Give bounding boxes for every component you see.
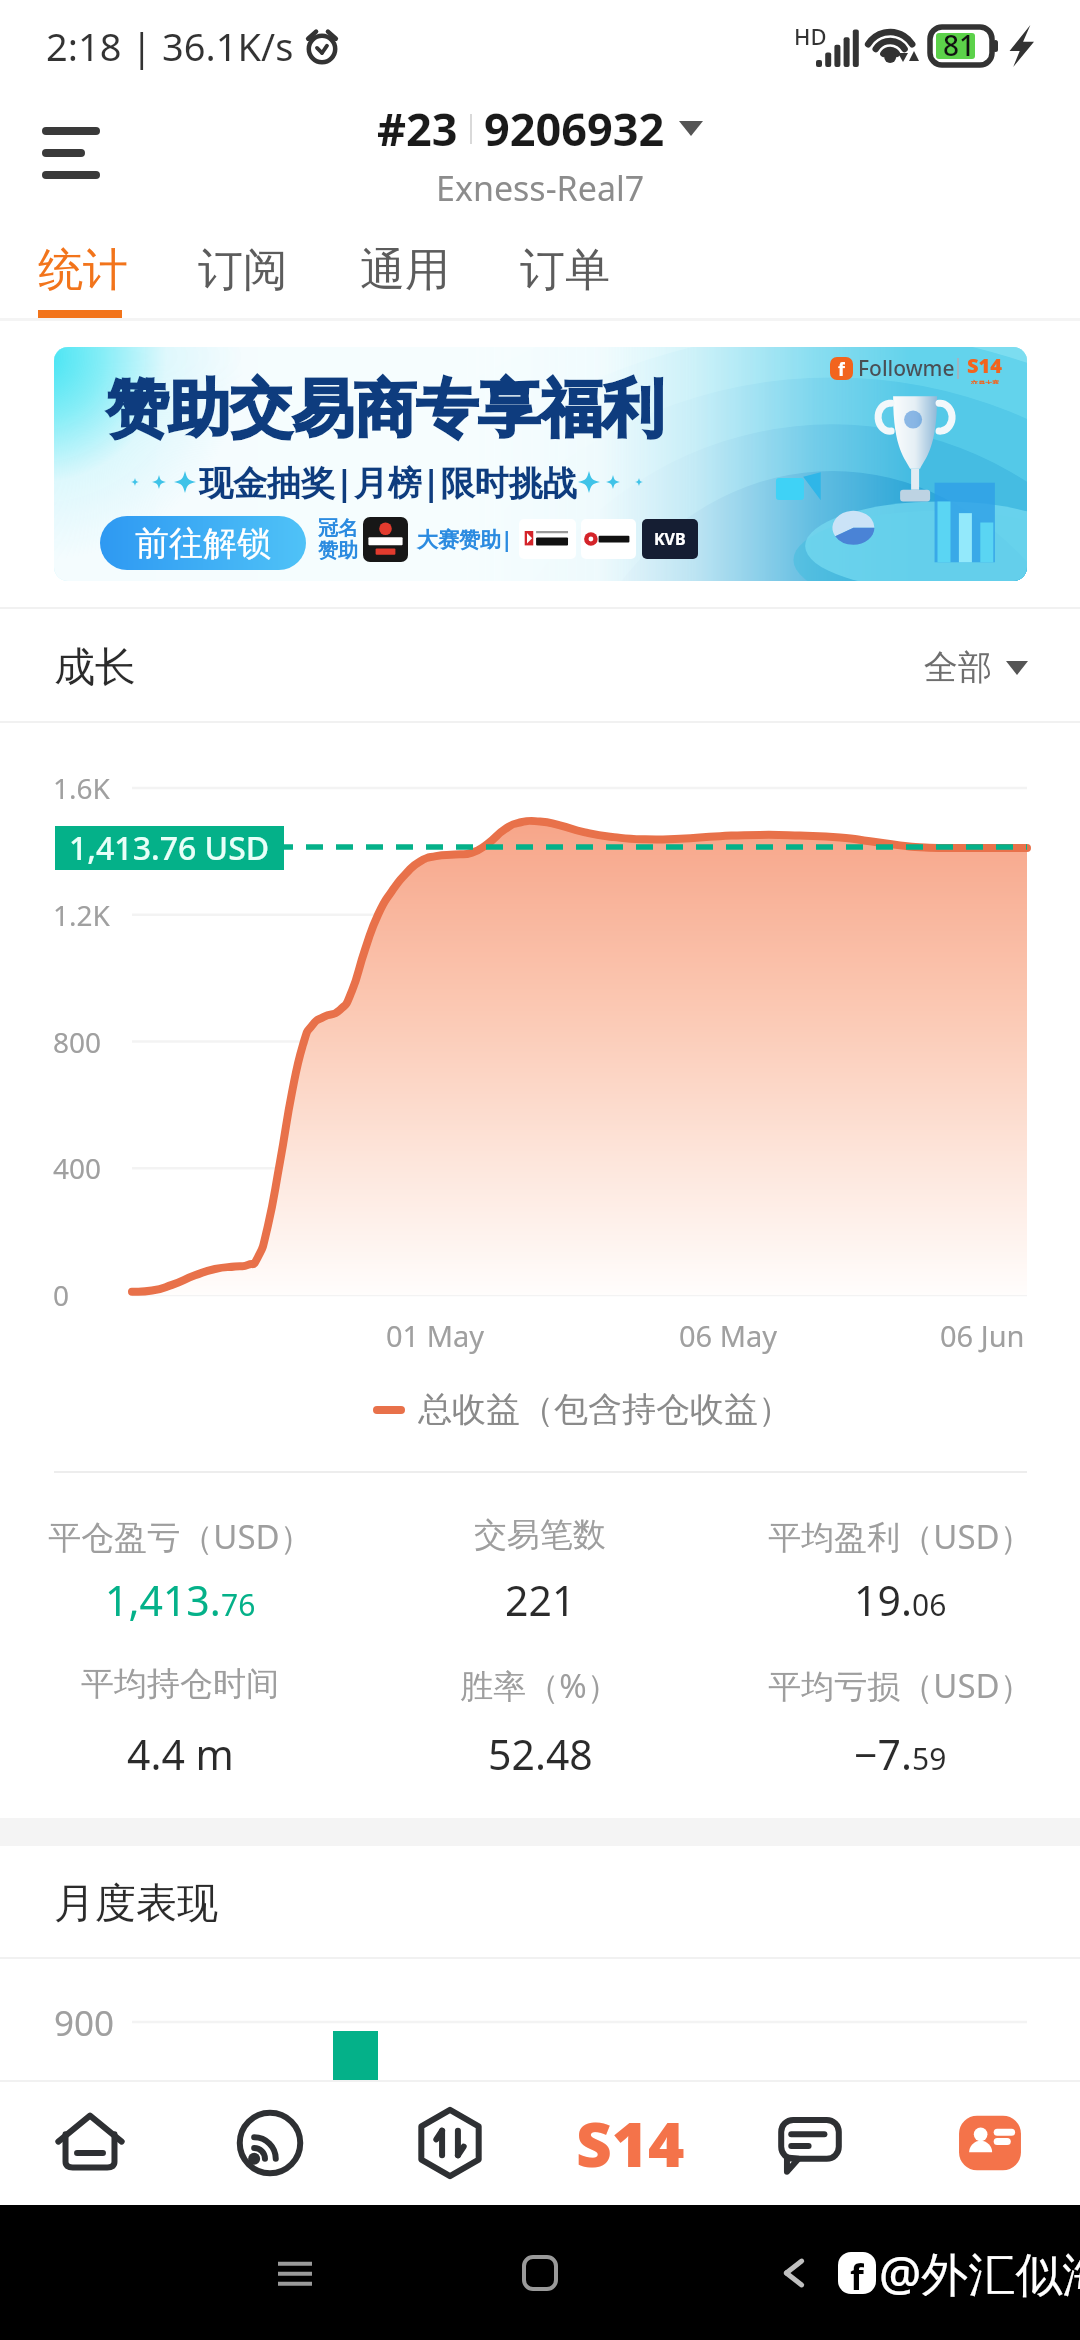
button[interactable]: Trade bbox=[360, 2080, 540, 2205]
staticText: 通用 bbox=[360, 242, 450, 299]
button[interactable]: 前往解锁 bbox=[100, 516, 306, 570]
button[interactable]: 统计 bbox=[38, 220, 162, 320]
button[interactable]: Recent apps bbox=[272, 2250, 318, 2296]
button[interactable]: S14 contest bbox=[540, 2080, 720, 2205]
staticText: 成长 bbox=[54, 642, 136, 694]
staticText: KVB bbox=[654, 528, 686, 550]
staticText: 总收益（包含持仓收益） bbox=[418, 1388, 792, 1431]
staticText: 06 May bbox=[679, 1316, 778, 1355]
staticText: 1.2K bbox=[53, 896, 110, 934]
staticText: 冠名 赞助 bbox=[318, 516, 358, 563]
staticText: Followme bbox=[858, 354, 955, 383]
staticText: 交易大赛 bbox=[971, 379, 999, 384]
staticText: 订单 bbox=[520, 242, 610, 299]
staticText: 800 bbox=[53, 1023, 102, 1061]
staticText: 大赛赞助| bbox=[417, 525, 513, 554]
staticText: 81 bbox=[943, 26, 976, 64]
button[interactable]: Home bbox=[517, 2250, 563, 2296]
staticText: 平均盈利（USD） bbox=[768, 1514, 1033, 1559]
staticText: HD bbox=[794, 21, 827, 51]
staticText: 221 bbox=[505, 1572, 576, 1628]
button[interactable]: 订单 bbox=[520, 220, 644, 320]
staticText: 订阅 bbox=[198, 242, 288, 299]
staticText: 1,413. bbox=[105, 1572, 221, 1628]
staticText: 前往解锁 bbox=[135, 522, 271, 565]
staticText: 0 bbox=[53, 1276, 70, 1314]
staticText: 52.48 bbox=[488, 1726, 593, 1782]
staticText: 现金抽奖|月榜|限时挑战 bbox=[199, 459, 577, 505]
staticText: S14 bbox=[967, 352, 1002, 379]
staticText: 全部 bbox=[924, 646, 992, 689]
staticText: 平仓盈亏（USD） bbox=[48, 1514, 313, 1559]
staticText: 2:18 | 36.1K/s bbox=[46, 20, 294, 72]
staticText: Exness-Real7 bbox=[436, 165, 645, 211]
staticText: 59 bbox=[912, 1738, 947, 1779]
staticText: 01 May bbox=[386, 1316, 485, 1355]
button[interactable]: Back bbox=[782, 2250, 806, 2296]
staticText: 平均持仓时间 bbox=[81, 1663, 279, 1705]
staticText: #23 bbox=[377, 98, 458, 159]
staticText: 交易笔数 bbox=[474, 1514, 606, 1556]
staticText: 06 Jun bbox=[940, 1316, 1025, 1355]
staticText: −7. bbox=[854, 1726, 912, 1782]
button[interactable]: 赞助交易商专享福利 bbox=[54, 347, 1027, 581]
staticText: 平均亏损（USD） bbox=[768, 1663, 1033, 1708]
button[interactable]: Messages bbox=[720, 2080, 900, 2205]
staticText: 19. bbox=[854, 1572, 912, 1628]
staticText: 4.4 m bbox=[127, 1726, 234, 1782]
staticText: S14 bbox=[576, 2101, 685, 2185]
staticText: 76 bbox=[221, 1584, 256, 1625]
button[interactable]: Feed bbox=[180, 2080, 360, 2205]
staticText: 400 bbox=[53, 1149, 102, 1187]
staticText: 赞助交易商专享福利 bbox=[106, 370, 664, 448]
staticText: 06 bbox=[912, 1584, 947, 1625]
button[interactable]: 全部 bbox=[924, 646, 1028, 689]
staticText: 统计 bbox=[38, 242, 128, 299]
staticText: 胜率（%） bbox=[460, 1663, 620, 1708]
staticText: @外汇似海 bbox=[879, 2241, 1080, 2305]
button[interactable]: 通用 bbox=[360, 220, 484, 320]
staticText: 1,413.76 USD bbox=[69, 826, 270, 870]
staticText: 900 bbox=[54, 1999, 115, 2047]
staticText: 1.6K bbox=[53, 769, 110, 807]
button[interactable]: Menu bbox=[42, 124, 104, 186]
button[interactable]: Home bbox=[0, 2080, 180, 2205]
staticText: f bbox=[850, 2252, 864, 2294]
staticText: 月度表现 bbox=[54, 1878, 218, 1930]
staticText: f bbox=[838, 357, 845, 380]
staticText: 9206932 bbox=[484, 98, 665, 159]
button[interactable]: 订阅 bbox=[198, 220, 322, 320]
button[interactable]: Profile bbox=[900, 2080, 1080, 2205]
